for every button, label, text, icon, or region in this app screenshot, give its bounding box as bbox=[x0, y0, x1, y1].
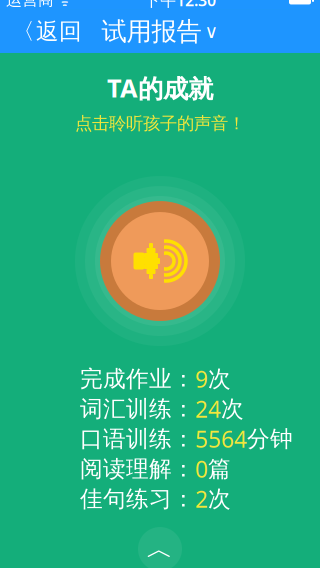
staticText: ︿ bbox=[146, 533, 173, 565]
staticText: 试用报告 bbox=[101, 16, 201, 47]
staticText: 返回 bbox=[36, 17, 82, 45]
staticText: 〈 bbox=[12, 17, 35, 45]
staticText: 次 bbox=[208, 365, 231, 393]
staticText: 佳句练习： bbox=[80, 485, 195, 513]
staticText: 0 bbox=[195, 454, 208, 484]
staticText: ᯤ bbox=[54, 0, 71, 10]
staticText: 口语训练： bbox=[80, 425, 195, 453]
button[interactable]: 〈 bbox=[4, 11, 90, 51]
button[interactable]: 播放孩子的声音 bbox=[75, 176, 245, 346]
staticText: 阅读理解： bbox=[80, 455, 195, 483]
staticText: 词汇训练： bbox=[80, 395, 195, 423]
staticText: 分钟 bbox=[247, 425, 293, 453]
staticText: 24 bbox=[195, 394, 221, 424]
staticText: ∨ bbox=[204, 21, 218, 42]
staticText: 下午12:30 bbox=[144, 0, 216, 10]
staticText: 次 bbox=[221, 395, 244, 423]
staticText: 完成作业： bbox=[80, 365, 195, 393]
staticText: 9 bbox=[195, 364, 208, 394]
staticText: 2 bbox=[195, 484, 208, 514]
staticText: 运营商 bbox=[6, 0, 54, 10]
staticText: 点击聆听孩子的声音！ bbox=[75, 113, 245, 134]
staticText: 次 bbox=[208, 485, 231, 513]
staticText: 篇 bbox=[208, 455, 231, 483]
button[interactable]: 向上 bbox=[133, 522, 187, 568]
staticText: TA的成就 bbox=[107, 71, 213, 105]
staticText: 5564 bbox=[195, 424, 247, 454]
